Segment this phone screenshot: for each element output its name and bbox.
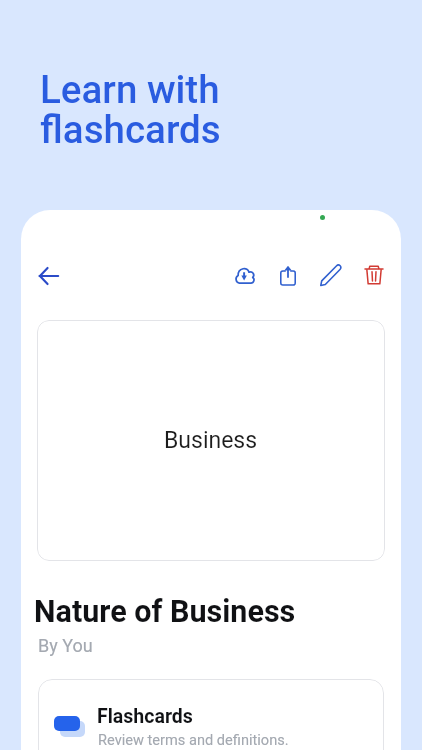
- button[interactable]: Edit: [311, 255, 351, 295]
- staticText: Business: [164, 427, 258, 454]
- staticText: Nature of Business: [34, 594, 296, 630]
- staticText: Review terms and definitions.: [98, 731, 289, 748]
- staticText: By You: [38, 635, 93, 656]
- button[interactable]: Business: [37, 320, 385, 561]
- button[interactable]: Download: [225, 255, 265, 295]
- button[interactable]: Share: [268, 255, 308, 295]
- staticText: Flashcards: [97, 705, 193, 728]
- button[interactable]: Back: [29, 256, 69, 296]
- button[interactable]: Delete: [354, 255, 394, 295]
- button[interactable]: Flashcards: [38, 679, 384, 750]
- staticText: Learn with flashcards: [40, 67, 221, 153]
